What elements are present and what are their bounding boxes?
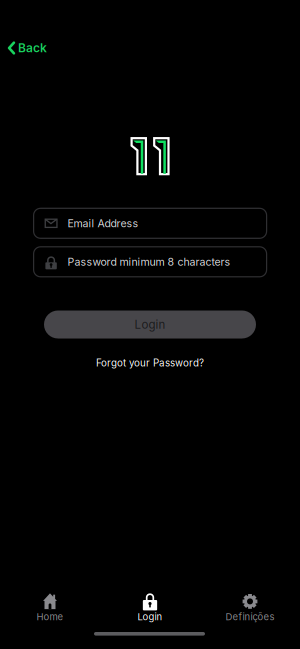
staticText: Back: [18, 41, 47, 55]
staticText: Password minimum 8 characters: [68, 255, 231, 268]
button[interactable]: Login: [44, 310, 256, 338]
button[interactable]: Email Address: [34, 208, 267, 238]
button[interactable]: Back: [8, 36, 47, 60]
button[interactable]: Forgot your Password?: [96, 357, 204, 369]
staticText: Definições: [225, 611, 274, 622]
button[interactable]: Login: [100, 585, 200, 629]
staticText: Forgot your Password?: [96, 357, 204, 369]
button[interactable]: Definições: [200, 585, 300, 629]
button[interactable]: Password minimum 8 characters: [34, 247, 267, 277]
staticText: Login: [137, 611, 162, 622]
staticText: Home: [36, 611, 63, 622]
staticText: Login: [134, 317, 165, 331]
button[interactable]: Home: [0, 585, 100, 629]
staticText: Email Address: [68, 217, 139, 230]
